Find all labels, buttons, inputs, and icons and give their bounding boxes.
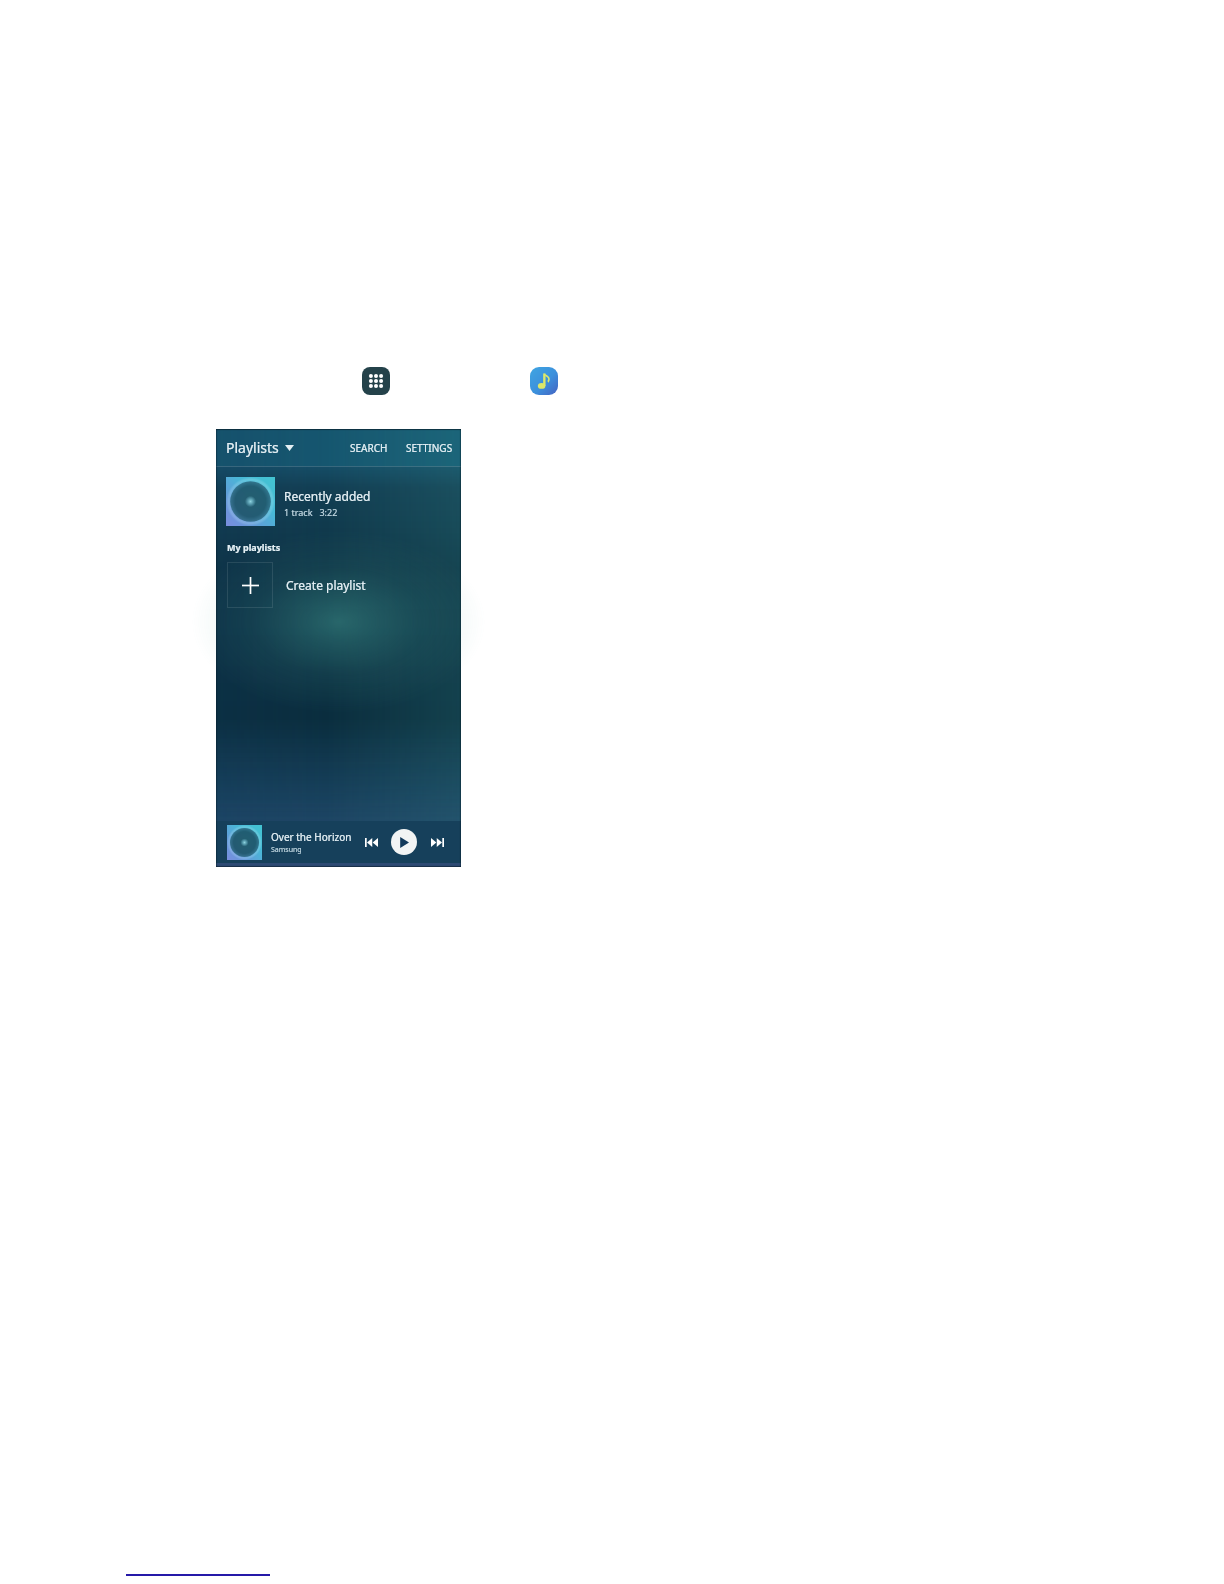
staticText: Create playlist <box>286 577 366 593</box>
button[interactable]: Play <box>391 829 417 855</box>
button[interactable]: Previous track <box>360 831 382 853</box>
button[interactable]: SETTINGS <box>406 441 461 455</box>
staticText: My playlists <box>227 541 281 553</box>
button[interactable]: Music app <box>530 367 558 395</box>
button[interactable]: SEARCH <box>350 441 388 455</box>
button[interactable]: Apps <box>362 367 390 395</box>
staticText: 1 track 3:22 <box>284 506 338 518</box>
button[interactable]: Playlists <box>226 438 294 457</box>
button[interactable]: Recently added <box>216 467 461 535</box>
button[interactable]: Create playlist <box>216 562 461 608</box>
staticText: Recently added <box>284 488 371 504</box>
staticText: Over the Horizon <box>271 830 352 844</box>
staticText: Samsung <box>271 845 302 855</box>
button[interactable]: Next track <box>426 831 448 853</box>
staticText: Playlists <box>226 438 279 457</box>
